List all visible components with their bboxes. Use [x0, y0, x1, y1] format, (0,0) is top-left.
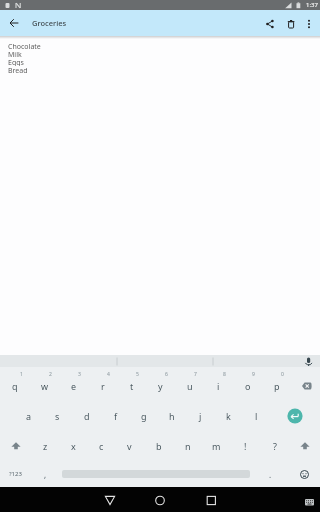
- staticText: 1: [20, 371, 23, 378]
- staticText: k: [226, 410, 231, 422]
- button[interactable]: ?123: [0, 461, 30, 487]
- staticText: Groceries: [32, 18, 67, 28]
- staticText: ?: [273, 440, 277, 452]
- button[interactable]: x: [59, 431, 87, 461]
- button[interactable]: z: [31, 431, 59, 461]
- button[interactable]: f: [101, 401, 130, 431]
- button[interactable]: [261, 15, 278, 32]
- button[interactable]: [4, 13, 24, 33]
- button[interactable]: ?: [260, 431, 289, 461]
- staticText: e: [71, 380, 77, 392]
- staticText: z: [43, 440, 48, 452]
- staticText: x: [71, 440, 76, 452]
- staticText: d: [84, 410, 90, 422]
- button[interactable]: [60, 470, 252, 478]
- button[interactable]: [291, 371, 320, 401]
- staticText: p: [274, 380, 280, 392]
- staticText: b: [156, 440, 162, 452]
- button[interactable]: [180, 487, 220, 512]
- button[interactable]: h: [158, 401, 186, 431]
- staticText: .: [269, 469, 272, 480]
- staticText: c: [99, 440, 104, 452]
- button[interactable]: y: [146, 371, 175, 401]
- button[interactable]: j: [186, 401, 214, 431]
- button[interactable]: [270, 401, 320, 431]
- staticText: o: [245, 380, 251, 392]
- staticText: u: [187, 380, 193, 392]
- button[interactable]: i: [204, 371, 233, 401]
- button[interactable]: [283, 16, 299, 32]
- staticText: t: [130, 380, 134, 392]
- staticText: f: [114, 410, 118, 422]
- staticText: ,: [44, 469, 47, 480]
- staticText: 4: [107, 371, 110, 378]
- button[interactable]: e: [59, 371, 88, 401]
- staticText: w: [41, 380, 49, 392]
- staticText: a: [26, 410, 32, 422]
- button[interactable]: g: [130, 401, 158, 431]
- button[interactable]: r: [88, 371, 117, 401]
- staticText: s: [55, 410, 60, 422]
- staticText: !: [244, 440, 247, 452]
- staticText: 6: [165, 371, 168, 378]
- staticText: ?123: [9, 470, 22, 478]
- button[interactable]: [288, 461, 320, 487]
- staticText: v: [127, 440, 132, 452]
- button[interactable]: v: [115, 431, 144, 461]
- staticText: m: [212, 440, 221, 452]
- button[interactable]: n: [173, 431, 202, 461]
- button[interactable]: !: [231, 431, 260, 461]
- staticText: 0: [281, 371, 284, 378]
- staticText: 7: [194, 371, 197, 378]
- staticText: Eggs: [8, 58, 24, 66]
- staticText: y: [158, 380, 163, 392]
- button[interactable]: k: [214, 401, 242, 431]
- staticText: q: [12, 380, 18, 392]
- button[interactable]: b: [144, 431, 173, 461]
- button[interactable]: s: [43, 401, 72, 431]
- button[interactable]: [100, 487, 140, 512]
- button[interactable]: m: [202, 431, 231, 461]
- staticText: 8: [223, 371, 226, 378]
- button[interactable]: u: [175, 371, 204, 401]
- staticText: 3: [78, 371, 81, 378]
- button[interactable]: c: [87, 431, 115, 461]
- staticText: n: [185, 440, 191, 452]
- button[interactable]: ,: [30, 461, 60, 487]
- button[interactable]: l: [242, 401, 270, 431]
- button[interactable]: [301, 16, 317, 32]
- staticText: 1:37: [306, 1, 318, 9]
- staticText: 9: [252, 371, 255, 378]
- staticText: 5: [136, 371, 139, 378]
- button[interactable]: w: [30, 371, 59, 401]
- staticText: Milk: [8, 50, 22, 58]
- staticText: Bread: [8, 66, 28, 74]
- button[interactable]: a: [14, 401, 43, 431]
- staticText: i: [217, 380, 220, 392]
- staticText: 2: [49, 371, 52, 378]
- button[interactable]: [140, 487, 180, 512]
- button[interactable]: d: [72, 401, 101, 431]
- staticText: j: [199, 410, 202, 422]
- staticText: l: [255, 410, 258, 422]
- staticText: r: [101, 380, 105, 392]
- button[interactable]: o: [233, 371, 262, 401]
- button[interactable]: q: [0, 371, 30, 401]
- button[interactable]: [289, 431, 320, 461]
- button[interactable]: [0, 431, 31, 461]
- button[interactable]: t: [117, 371, 146, 401]
- staticText: g: [141, 410, 147, 422]
- button[interactable]: p: [262, 371, 291, 401]
- staticText: h: [169, 410, 175, 422]
- staticText: Chocolate: [8, 42, 41, 50]
